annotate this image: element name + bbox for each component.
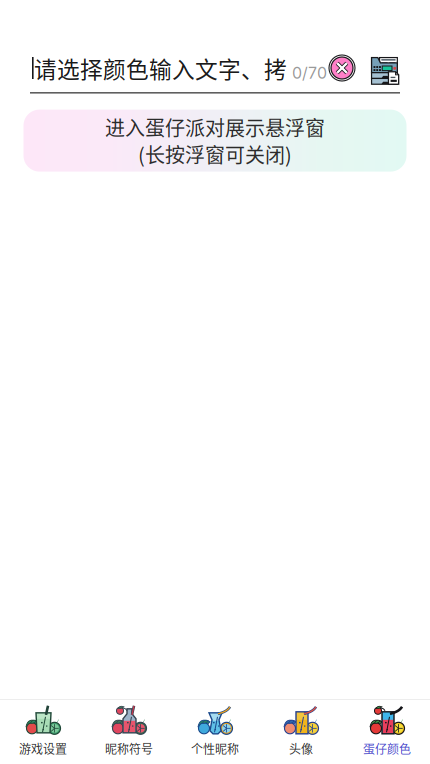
button[interactable]: 昵称符号 (86, 697, 172, 764)
button[interactable]: 头像 (258, 697, 344, 764)
staticText: 个性昵称 (191, 740, 239, 757)
staticText: 请选择颜色输入文字、拷 (34, 52, 287, 84)
button[interactable]: Copy (368, 54, 400, 86)
staticText: (长按浮窗可关闭) (138, 140, 292, 169)
staticText: 0/70 (292, 63, 327, 83)
staticText: 蛋仔颜色 (363, 740, 411, 757)
button[interactable]: 蛋仔颜色 (344, 697, 430, 764)
staticText: 头像 (289, 740, 313, 757)
staticText: 昵称符号 (105, 740, 153, 757)
button[interactable]: Clear text (326, 52, 358, 84)
staticText: 游戏设置 (19, 740, 67, 757)
button[interactable]: 个性昵称 (172, 697, 258, 764)
button[interactable]: 进入蛋仔派对展示悬浮窗 (23, 110, 406, 172)
staticText: 进入蛋仔派对展示悬浮窗 (105, 113, 325, 142)
button[interactable]: 游戏设置 (0, 697, 86, 764)
